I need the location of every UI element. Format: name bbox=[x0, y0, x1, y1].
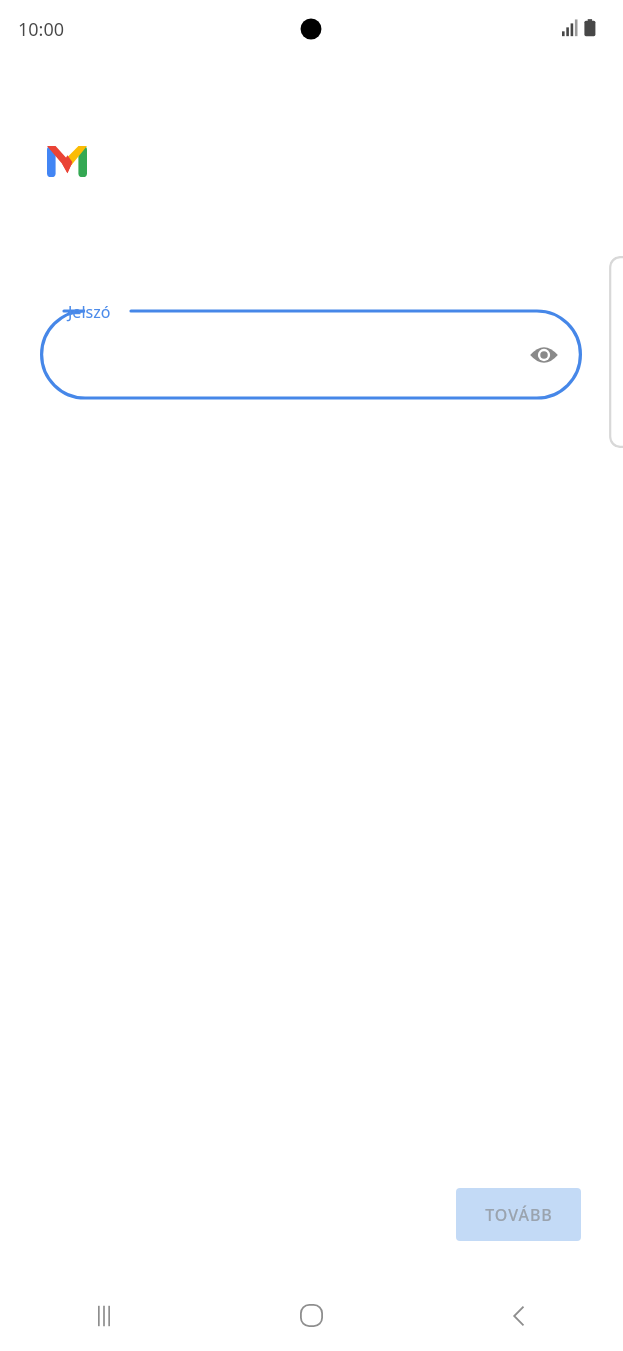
button[interactable]: Recent apps bbox=[0, 1280, 207, 1351]
staticText: 10:00 bbox=[18, 17, 65, 42]
button[interactable]: Jelszó bbox=[40, 300, 582, 399]
staticText: TOVÁBB bbox=[485, 1204, 553, 1226]
button[interactable]: Home bbox=[207, 1280, 415, 1351]
staticText: Jelszó bbox=[68, 301, 111, 323]
button[interactable]: Show password bbox=[522, 333, 566, 377]
button[interactable]: Back bbox=[415, 1280, 623, 1351]
button[interactable]: TOVÁBB bbox=[456, 1188, 581, 1241]
